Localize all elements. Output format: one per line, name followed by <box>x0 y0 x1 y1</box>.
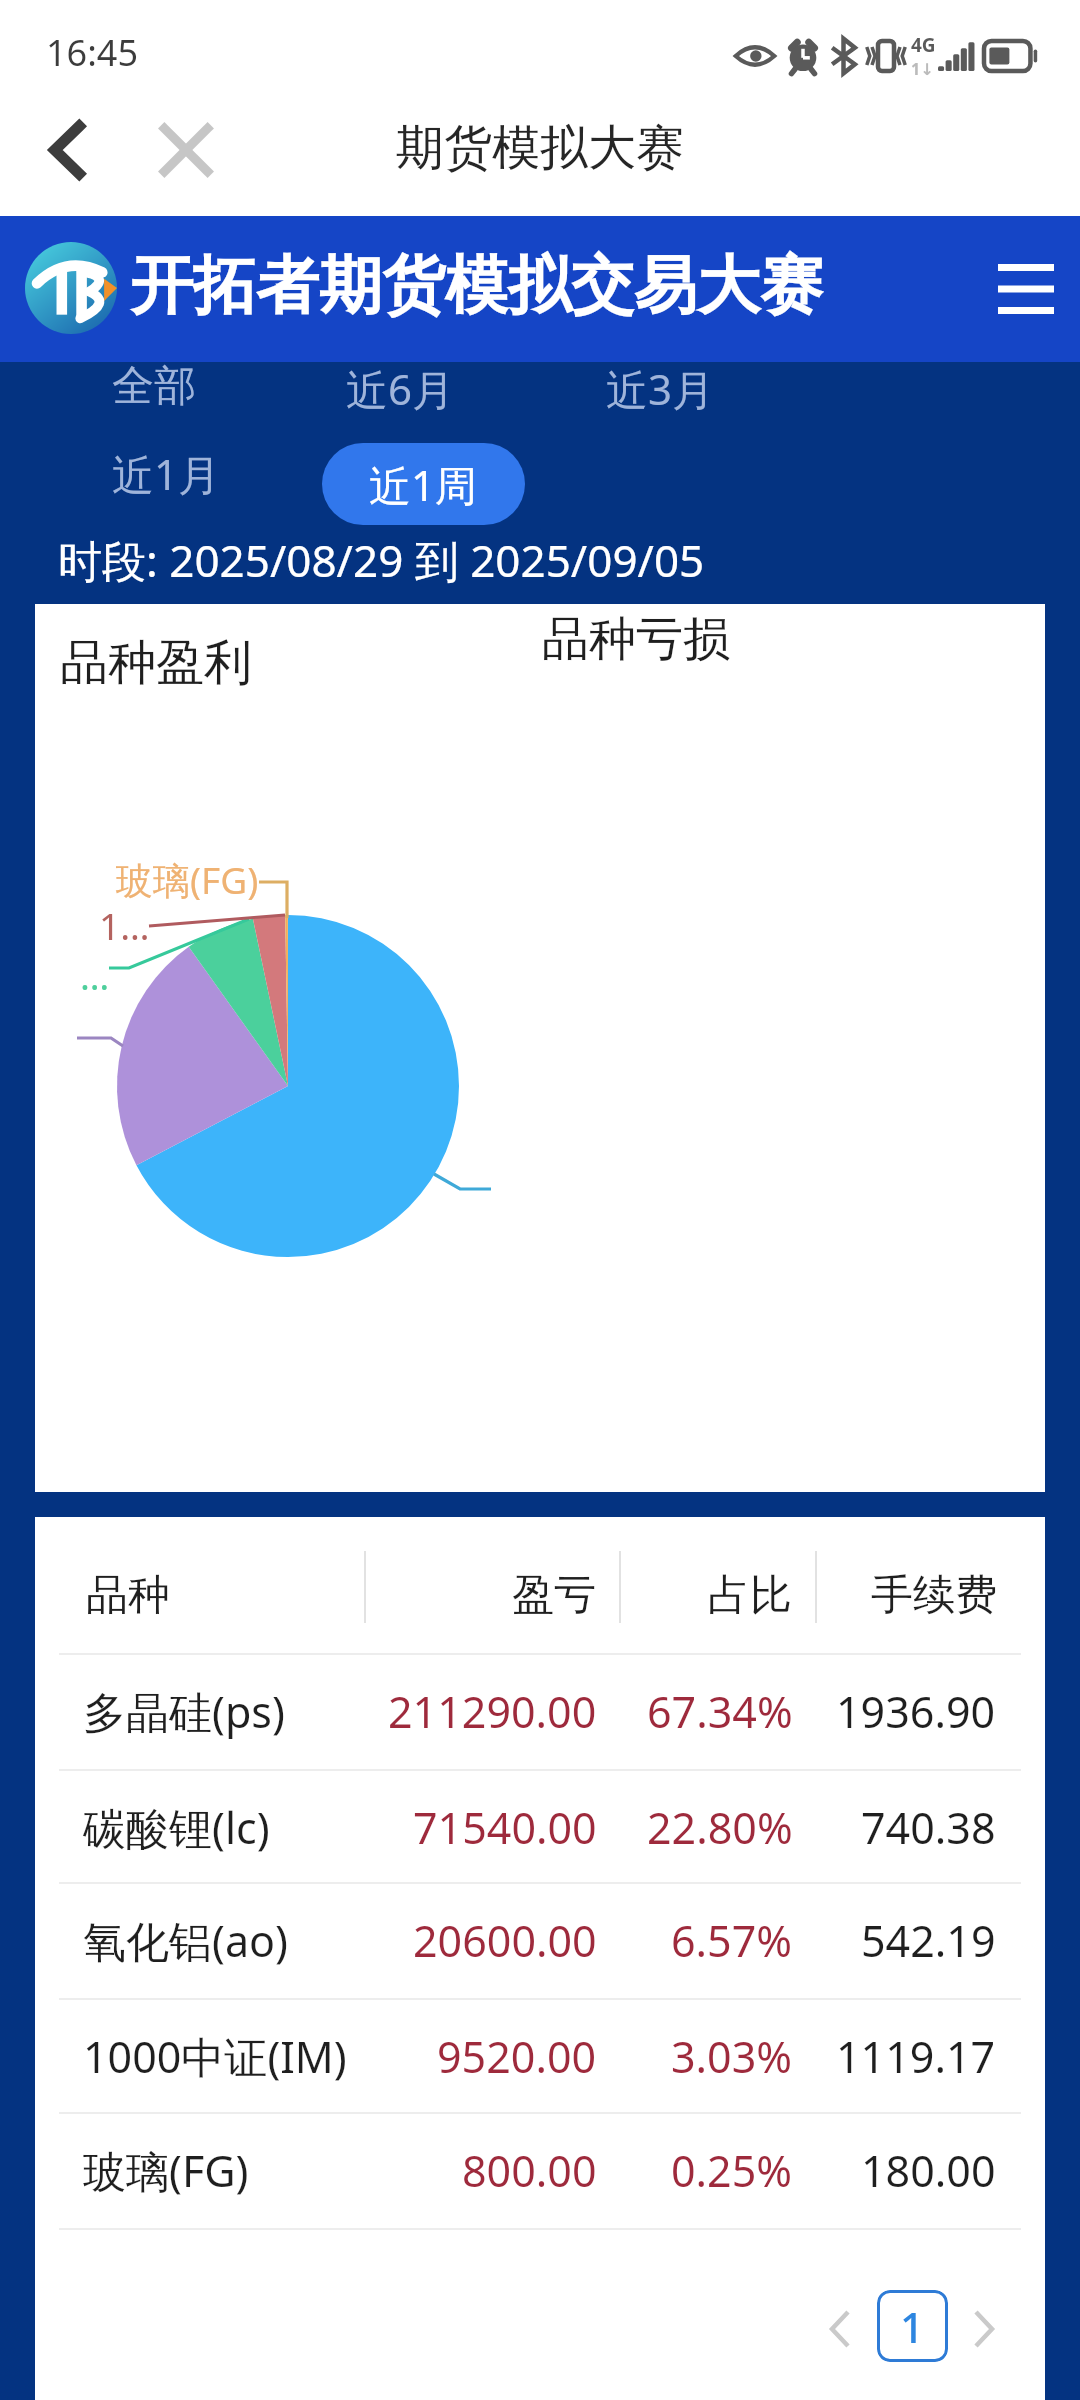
staticText: 9520.00 <box>437 2027 597 2086</box>
button[interactable]: Previous page <box>812 2301 868 2357</box>
staticText: 手续费 <box>871 1569 997 1622</box>
staticText: 开拓者期货模拟交易大赛 <box>130 246 823 325</box>
staticText: 碳酸锂(lc) <box>83 1798 270 1857</box>
staticText: 1119.17 <box>836 2027 996 2086</box>
staticText: 3.03% <box>671 2027 793 2086</box>
staticText: 全部 <box>112 360 196 413</box>
staticText: 品种 <box>86 1569 170 1622</box>
staticText: 6.57% <box>671 1911 793 1970</box>
staticText: 品种亏损 <box>542 610 730 669</box>
staticText: 4G <box>911 32 936 58</box>
staticText: 800.00 <box>462 2141 597 2200</box>
button[interactable]: 玻璃(FG) <box>35 2112 1045 2228</box>
staticText: 多晶硅(ps) <box>83 1682 285 1741</box>
staticText: 0.25% <box>671 2141 793 2200</box>
staticText: 740.38 <box>861 1798 996 1857</box>
button[interactable]: 1000中证(IM) <box>35 1998 1045 2114</box>
button[interactable]: 全部 <box>92 350 216 423</box>
staticText: 氧化铝(ao) <box>83 1911 288 1970</box>
staticText: 1000中证(IM) <box>83 2027 347 2086</box>
staticText: 542.19 <box>861 1911 996 1970</box>
staticText: 品种盈利 <box>60 633 252 693</box>
button[interactable]: 碳酸锂(lc) <box>35 1769 1045 1885</box>
staticText: 1… <box>99 900 150 950</box>
staticText: 1936.90 <box>836 1682 996 1741</box>
staticText: 期货模拟大赛 <box>396 118 684 178</box>
staticText: 22.80% <box>647 1798 793 1857</box>
button[interactable]: 近1周 <box>322 443 525 525</box>
staticText: 占比 <box>708 1569 792 1622</box>
button[interactable]: Menu <box>978 258 1074 320</box>
staticText: 180.00 <box>861 2141 996 2200</box>
staticText: 近1周 <box>369 456 478 513</box>
staticText: 211290.00 <box>388 1682 597 1741</box>
button[interactable]: Back <box>31 114 103 186</box>
staticText: 67.34% <box>647 1682 793 1741</box>
button[interactable]: 氧化铝(ao) <box>35 1882 1045 1998</box>
staticText: 时段: 2025/08/29 到 2025/09/05 <box>58 530 705 590</box>
staticText: … <box>80 950 110 1000</box>
button[interactable]: Close <box>150 114 222 186</box>
staticText: 20600.00 <box>413 1911 597 1970</box>
button[interactable]: 近6月 <box>326 350 475 427</box>
staticText: 玻璃(FG) <box>83 2141 249 2200</box>
staticText: 近6月 <box>346 360 455 417</box>
staticText: 1 <box>900 2298 925 2355</box>
staticText: 近3月 <box>606 360 715 417</box>
button[interactable]: Next page <box>956 2301 1012 2357</box>
button[interactable]: 近3月 <box>586 350 735 427</box>
staticText: 16:45 <box>46 28 139 77</box>
staticText: 盈亏 <box>512 1569 596 1622</box>
staticText: 近1月 <box>112 445 221 502</box>
button[interactable]: 1 <box>877 2290 948 2362</box>
staticText: 71540.00 <box>413 1798 597 1857</box>
button[interactable]: 近1月 <box>92 435 241 512</box>
staticText: 玻璃(FG) <box>116 854 259 905</box>
button[interactable]: 多晶硅(ps) <box>35 1653 1045 1769</box>
staticText: 1↓ <box>911 58 934 80</box>
